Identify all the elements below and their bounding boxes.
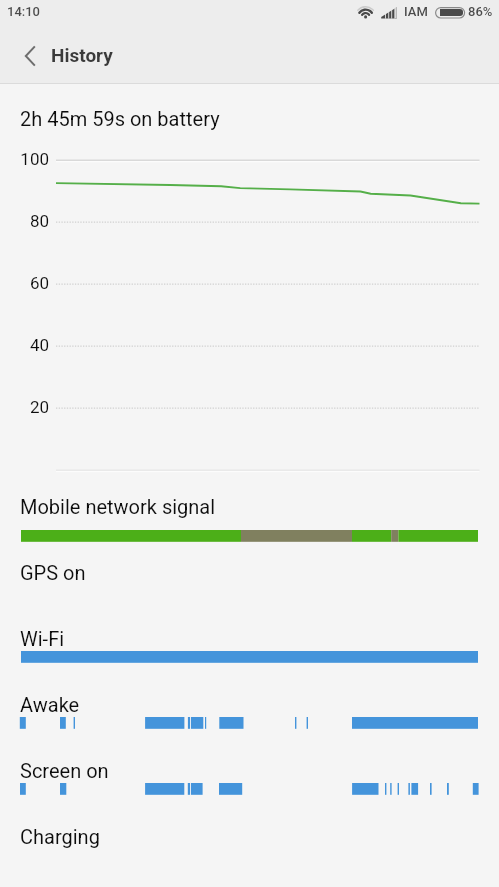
other: Battery 86 percent — [433, 4, 467, 22]
staticText: 20 — [29, 397, 49, 417]
staticText: History — [51, 44, 113, 66]
staticText: 40 — [29, 335, 49, 355]
staticText: 2h 45m 59s on battery — [20, 107, 220, 130]
staticText: Awake — [20, 693, 80, 716]
staticText: GPS on — [20, 561, 86, 584]
staticText: 100 — [20, 149, 49, 169]
staticText: Charging — [20, 825, 100, 848]
button[interactable]: Back — [6, 28, 50, 83]
staticText: 14:10 — [7, 4, 40, 19]
staticText: Mobile network signal — [20, 495, 216, 518]
other: Wi-Fi signal — [353, 2, 378, 23]
staticText: 80 — [29, 211, 49, 231]
staticText: IAM — [404, 4, 428, 19]
staticText: 86% — [468, 4, 493, 19]
staticText: Screen on — [20, 759, 109, 782]
staticText: Wi-Fi — [20, 627, 65, 650]
staticText: 60 — [29, 273, 49, 293]
other: Mobile signal — [378, 4, 399, 22]
